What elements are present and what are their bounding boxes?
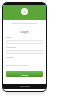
staticText: Email [6,36,12,39]
button[interactable] [6,50,43,54]
button[interactable] [6,40,43,44]
staticText: Login [3,30,46,34]
button[interactable]: LOGIN [6,71,43,77]
staticText: Password [6,46,16,49]
staticText: LOGIN [21,73,29,76]
staticText: Sign in to your account [3,21,46,24]
staticText: Don't have an account? [6,64,29,67]
button[interactable]: Forgot? [6,56,14,59]
